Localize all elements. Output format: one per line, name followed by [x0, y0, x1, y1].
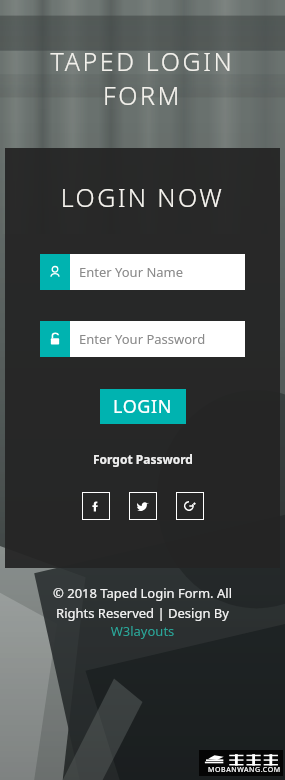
staticText: TAPED LOGIN FORM — [0, 44, 285, 112]
other: Password field — [40, 321, 70, 357]
staticText: Enter Your Password — [79, 330, 206, 348]
staticText: LOGIN — [113, 394, 173, 419]
staticText: © 2018 Taped Login Form. All Rights Rese… — [0, 584, 285, 622]
button[interactable]: W3layouts — [0, 622, 285, 640]
staticText: Enter Your Name — [79, 263, 184, 281]
staticText: MOBANWANG.COM — [208, 765, 281, 775]
button[interactable]: Google Plus — [176, 492, 204, 520]
button[interactable]: Twitter — [129, 492, 157, 520]
button[interactable]: Password field — [40, 321, 245, 357]
staticText: LOGIN NOW — [5, 180, 280, 214]
button[interactable]: Forgot Password — [89, 447, 197, 471]
button[interactable]: Facebook — [82, 492, 110, 520]
staticText: Forgot Password — [93, 451, 193, 467]
staticText: W3layouts — [0, 622, 285, 640]
button[interactable]: User name field — [40, 254, 245, 290]
other: User name field — [40, 254, 70, 290]
button[interactable]: LOGIN — [100, 389, 186, 424]
